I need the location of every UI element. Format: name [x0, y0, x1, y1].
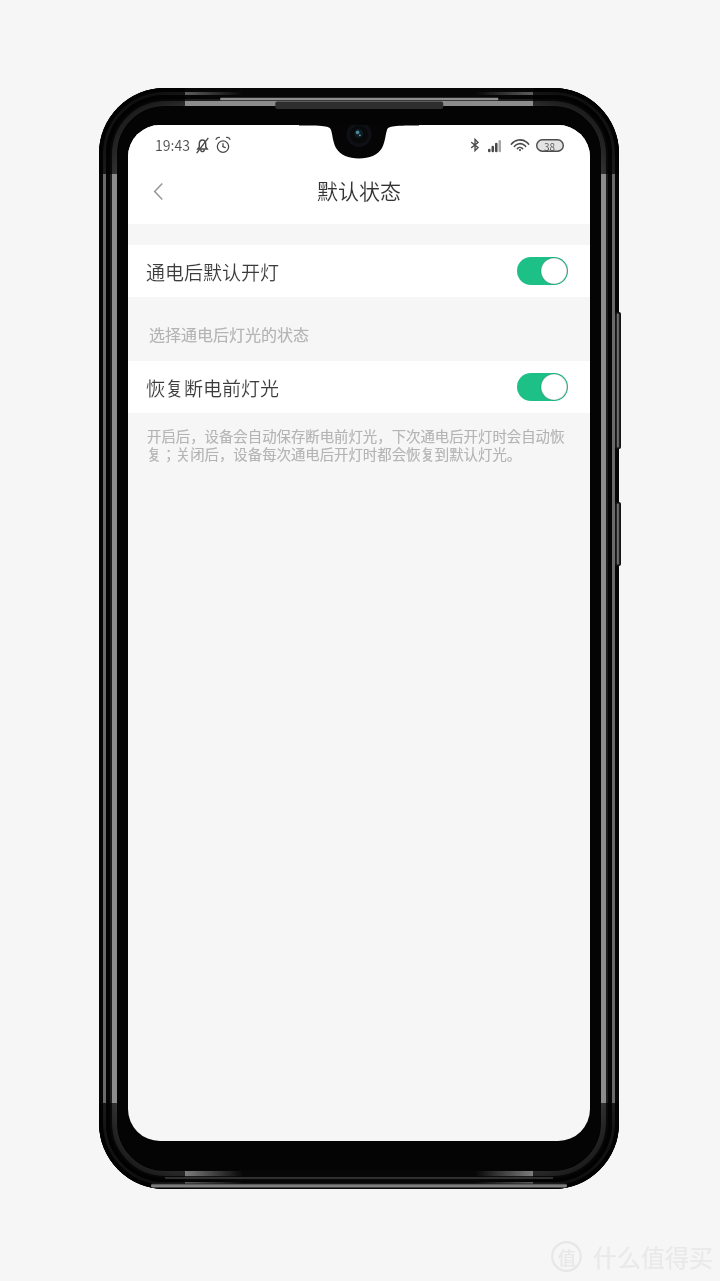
staticText: 38	[544, 139, 556, 152]
staticText: 选择通电后灯光的状态	[149, 322, 310, 345]
button[interactable]: Toggle	[517, 373, 568, 401]
staticText: 默认状态	[317, 175, 401, 205]
button[interactable]: 恢复断电前灯光	[128, 361, 590, 413]
staticText: 什么值得买	[593, 1239, 713, 1274]
staticText: 恢复断电前灯光	[146, 374, 280, 402]
staticText: 开启后，设备会自动保存断电前灯光，下次通电后开灯时会自动恢复；关闭后，设备每次通…	[147, 425, 572, 464]
button[interactable]: 通电后默认开灯	[128, 245, 590, 297]
staticText: 通电后默认开灯	[146, 258, 280, 286]
button[interactable]: Toggle	[517, 257, 568, 285]
button[interactable]: Back	[135, 168, 181, 214]
staticText: 19:43	[155, 135, 190, 155]
staticText: 值	[558, 1244, 576, 1270]
